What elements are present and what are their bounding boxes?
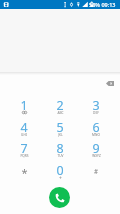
staticText: 5 bbox=[56, 119, 64, 136]
staticText: 1 bbox=[20, 97, 28, 114]
staticText: + bbox=[59, 175, 62, 182]
button[interactable]: Call bbox=[49, 187, 70, 208]
staticText: * bbox=[21, 165, 28, 180]
button[interactable]: 8 bbox=[42, 140, 78, 161]
staticText: TUV bbox=[57, 154, 64, 158]
staticText: ABC bbox=[57, 111, 64, 115]
staticText: DEF bbox=[93, 111, 99, 115]
staticText: 9 bbox=[92, 140, 100, 157]
button[interactable]: 0 bbox=[42, 162, 78, 183]
staticText: JKL bbox=[58, 133, 63, 137]
staticText: 58% 09:13 bbox=[89, 1, 116, 8]
button[interactable]: 2 bbox=[42, 97, 78, 118]
staticText: 4 bbox=[20, 119, 28, 136]
staticText: 3 bbox=[92, 97, 100, 114]
staticText: 2 bbox=[56, 97, 64, 114]
button[interactable]: 1 bbox=[6, 97, 42, 118]
button[interactable]: 5 bbox=[42, 119, 78, 140]
button[interactable]: Backspace bbox=[102, 75, 118, 91]
staticText: GHI bbox=[21, 133, 27, 137]
button[interactable]: 4 bbox=[6, 119, 42, 140]
staticText: PQRS bbox=[20, 154, 29, 158]
staticText: WXYZ bbox=[92, 154, 101, 158]
staticText: 7 bbox=[20, 140, 28, 157]
staticText: # bbox=[94, 167, 98, 175]
staticText: MNO bbox=[92, 133, 100, 137]
button[interactable]: 9 bbox=[78, 140, 114, 161]
button[interactable]: 7 bbox=[6, 140, 42, 161]
button[interactable]: 6 bbox=[78, 119, 114, 140]
button[interactable]: # bbox=[78, 162, 114, 183]
staticText: 6 bbox=[92, 119, 100, 136]
staticText: 8 bbox=[56, 140, 64, 157]
button[interactable]: 3 bbox=[78, 97, 114, 118]
staticText: 0 bbox=[56, 162, 64, 179]
button[interactable]: * bbox=[6, 162, 42, 183]
